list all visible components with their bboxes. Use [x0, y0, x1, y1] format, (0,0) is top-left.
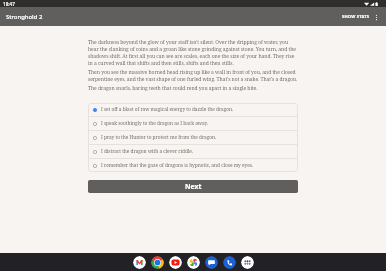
button[interactable]: I speak soothingly to the dragon as I ba…: [88, 117, 298, 130]
staticText: I pray to the Hunter to protect me from …: [101, 134, 217, 141]
button[interactable]: SHOW STATS: [339, 10, 370, 24]
button[interactable]: I distract the dragon with a clever ridd…: [88, 145, 298, 158]
button[interactable]: Photos: [187, 256, 200, 269]
staticText: Next: [185, 182, 202, 191]
staticText: The darkness beyond the glow of your sta…: [88, 39, 298, 67]
button[interactable]: I set off a blast of raw magical energy …: [88, 103, 298, 116]
staticText: I set off a blast of raw magical energy …: [101, 106, 234, 113]
button[interactable]: I remember that the gaze of dragons is h…: [88, 159, 298, 172]
button[interactable]: Chrome: [151, 256, 164, 269]
staticText: 18:47: [3, 1, 15, 7]
staticText: Stronghold 2: [6, 13, 43, 21]
button[interactable]: Messages: [205, 256, 218, 269]
staticText: I remember that the gaze of dragons is h…: [101, 162, 254, 169]
button[interactable]: More options: [370, 11, 382, 23]
staticText: SHOW STATS: [342, 14, 370, 20]
staticText: I distract the dragon with a clever ridd…: [101, 148, 194, 155]
button[interactable]: All apps: [241, 256, 254, 269]
button[interactable]: I pray to the Hunter to protect me from …: [88, 131, 298, 144]
staticText: The dragon snarls, baring teeth that cou…: [88, 85, 258, 92]
staticText: I speak soothingly to the dragon as I ba…: [101, 120, 208, 127]
button[interactable]: Next: [88, 180, 298, 193]
button[interactable]: YouTube: [169, 256, 182, 269]
button[interactable]: Phone: [223, 256, 236, 269]
button[interactable]: Gmail: [133, 256, 146, 269]
staticText: Then you see the massive horned head ris…: [88, 69, 298, 83]
